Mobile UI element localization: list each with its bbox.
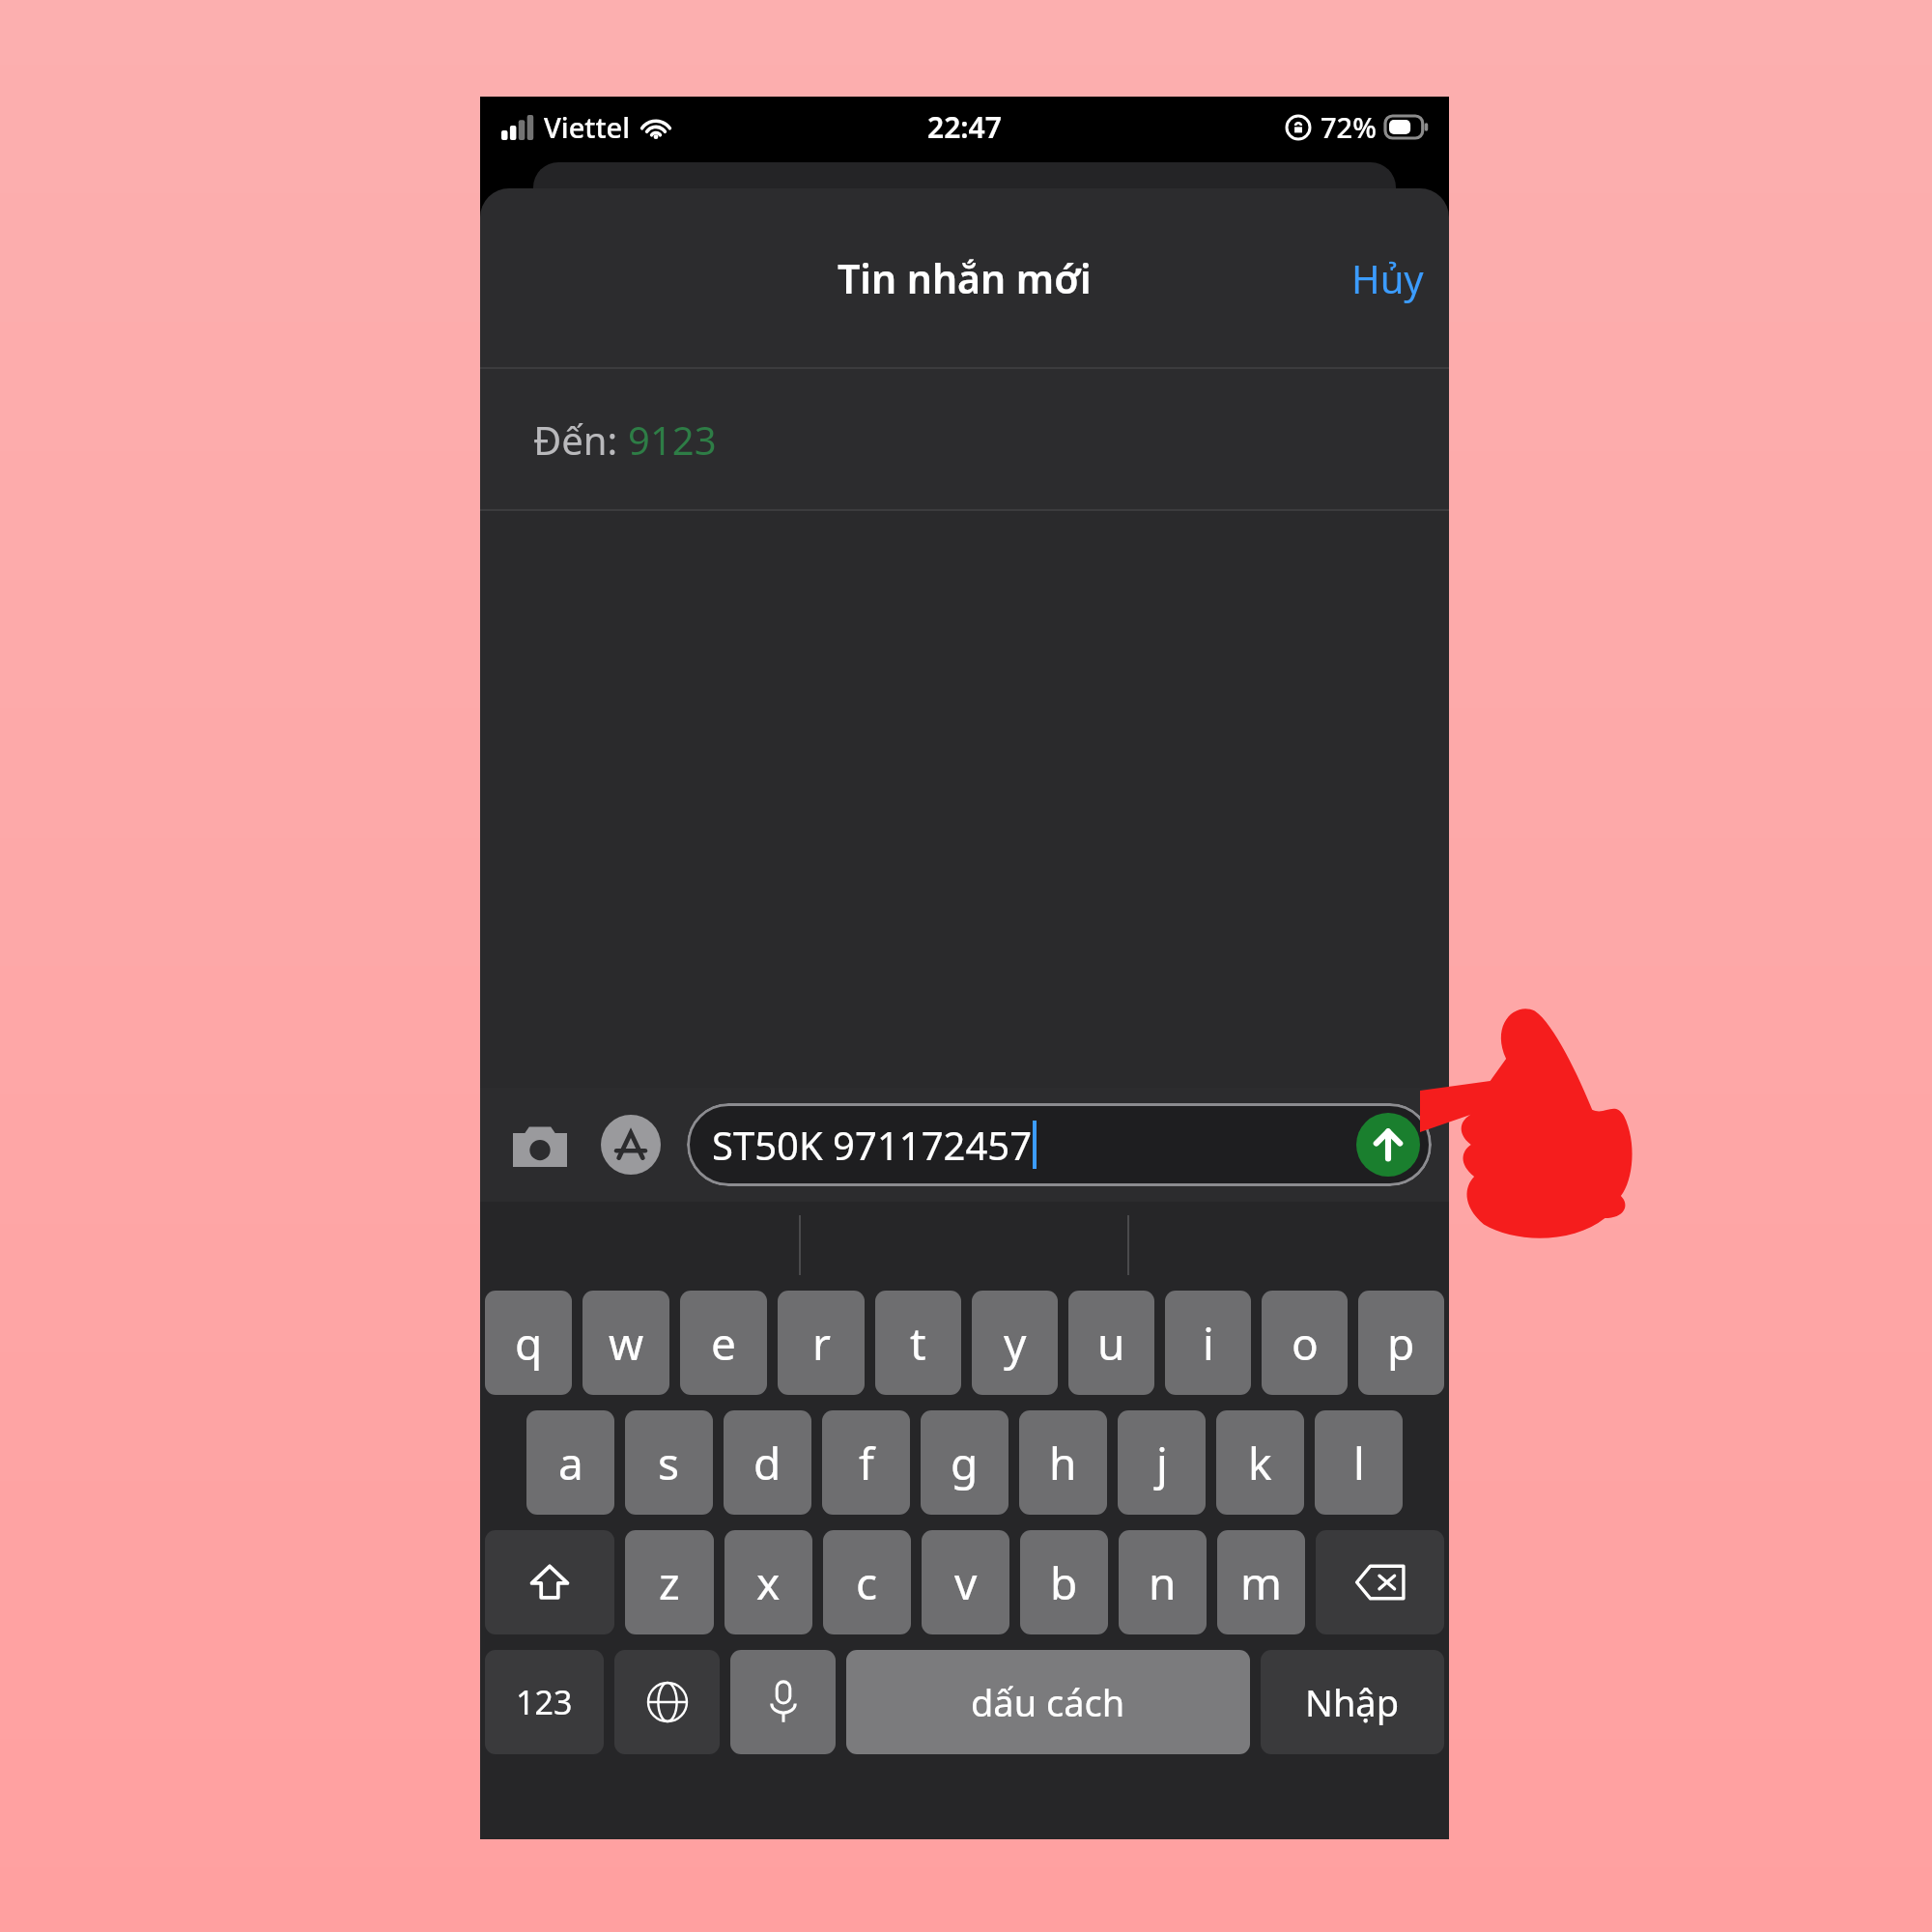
staticText: l: [1353, 1433, 1365, 1493]
button[interactable]: p: [1358, 1291, 1444, 1395]
staticText: h: [1049, 1433, 1077, 1493]
button[interactable]: z: [625, 1530, 714, 1634]
staticText: t: [910, 1313, 926, 1374]
button[interactable]: h: [1019, 1410, 1107, 1515]
staticText: v: [954, 1552, 978, 1613]
button[interactable]: g: [921, 1410, 1009, 1515]
staticText: r: [812, 1313, 831, 1374]
button[interactable]: Change keyboard language: [614, 1650, 720, 1754]
staticText: Đến:: [533, 413, 628, 466]
button[interactable]: q: [485, 1291, 572, 1395]
staticText: q: [515, 1313, 543, 1374]
staticText: z: [659, 1552, 680, 1613]
button[interactable]: n: [1119, 1530, 1207, 1634]
button[interactable]: e: [680, 1291, 767, 1395]
staticText: i: [1203, 1313, 1214, 1374]
button[interactable]: Đến:: [480, 369, 1449, 509]
staticText: g: [951, 1433, 979, 1493]
staticText: u: [1097, 1313, 1125, 1374]
staticText: dấu cách: [971, 1677, 1125, 1727]
staticText: 22:47: [927, 107, 1002, 147]
button[interactable]: Shift: [485, 1530, 614, 1634]
staticText: m: [1240, 1552, 1283, 1613]
button[interactable]: Nhập: [1261, 1650, 1444, 1754]
button[interactable]: 123: [485, 1650, 604, 1754]
staticText: Hủy: [1351, 252, 1424, 304]
button[interactable]: d: [724, 1410, 811, 1515]
staticText: y: [1004, 1313, 1027, 1374]
button[interactable]: o: [1262, 1291, 1348, 1395]
staticText: b: [1050, 1552, 1078, 1613]
button[interactable]: k: [1216, 1410, 1304, 1515]
staticText: Viettel: [544, 108, 631, 146]
button[interactable]: App Store: [598, 1112, 664, 1178]
staticText: p: [1387, 1313, 1415, 1374]
button[interactable]: a: [526, 1410, 614, 1515]
button[interactable]: b: [1020, 1530, 1108, 1634]
button[interactable]: c: [823, 1530, 911, 1634]
staticText: f: [859, 1433, 874, 1493]
button[interactable]: y: [972, 1291, 1058, 1395]
staticText: Nhập: [1305, 1677, 1400, 1727]
button[interactable]: ST50K 971172457: [687, 1103, 1432, 1186]
staticText: w: [609, 1313, 644, 1374]
button[interactable]: i: [1165, 1291, 1251, 1395]
staticText: x: [756, 1552, 781, 1613]
button[interactable]: u: [1068, 1291, 1154, 1395]
button[interactable]: r: [778, 1291, 865, 1395]
button[interactable]: w: [582, 1291, 669, 1395]
button[interactable]: m: [1217, 1530, 1305, 1634]
button[interactable]: Backspace: [1316, 1530, 1444, 1634]
button[interactable]: t: [875, 1291, 961, 1395]
staticText: o: [1292, 1313, 1319, 1374]
button[interactable]: v: [922, 1530, 1009, 1634]
staticText: 9123: [628, 413, 717, 466]
button[interactable]: Camera: [507, 1112, 573, 1178]
staticText: Tin nhắn mới: [838, 251, 1092, 305]
button[interactable]: Dictation: [730, 1650, 836, 1754]
button[interactable]: dấu cách: [846, 1650, 1250, 1754]
staticText: ST50K 971172457: [712, 1119, 1033, 1171]
button[interactable]: x: [724, 1530, 812, 1634]
staticText: n: [1149, 1552, 1177, 1613]
button[interactable]: f: [822, 1410, 910, 1515]
button[interactable]: Hủy: [1326, 239, 1449, 318]
staticText: s: [658, 1433, 680, 1493]
staticText: c: [856, 1552, 878, 1613]
staticText: k: [1248, 1433, 1272, 1493]
button[interactable]: s: [625, 1410, 713, 1515]
staticText: 72%: [1321, 108, 1377, 146]
button[interactable]: j: [1118, 1410, 1206, 1515]
staticText: a: [558, 1433, 583, 1493]
staticText: j: [1156, 1433, 1168, 1493]
button[interactable]: l: [1315, 1410, 1403, 1515]
button[interactable]: Send: [1356, 1113, 1420, 1177]
staticText: d: [753, 1433, 781, 1493]
staticText: 123: [516, 1680, 573, 1724]
staticText: e: [711, 1313, 736, 1374]
